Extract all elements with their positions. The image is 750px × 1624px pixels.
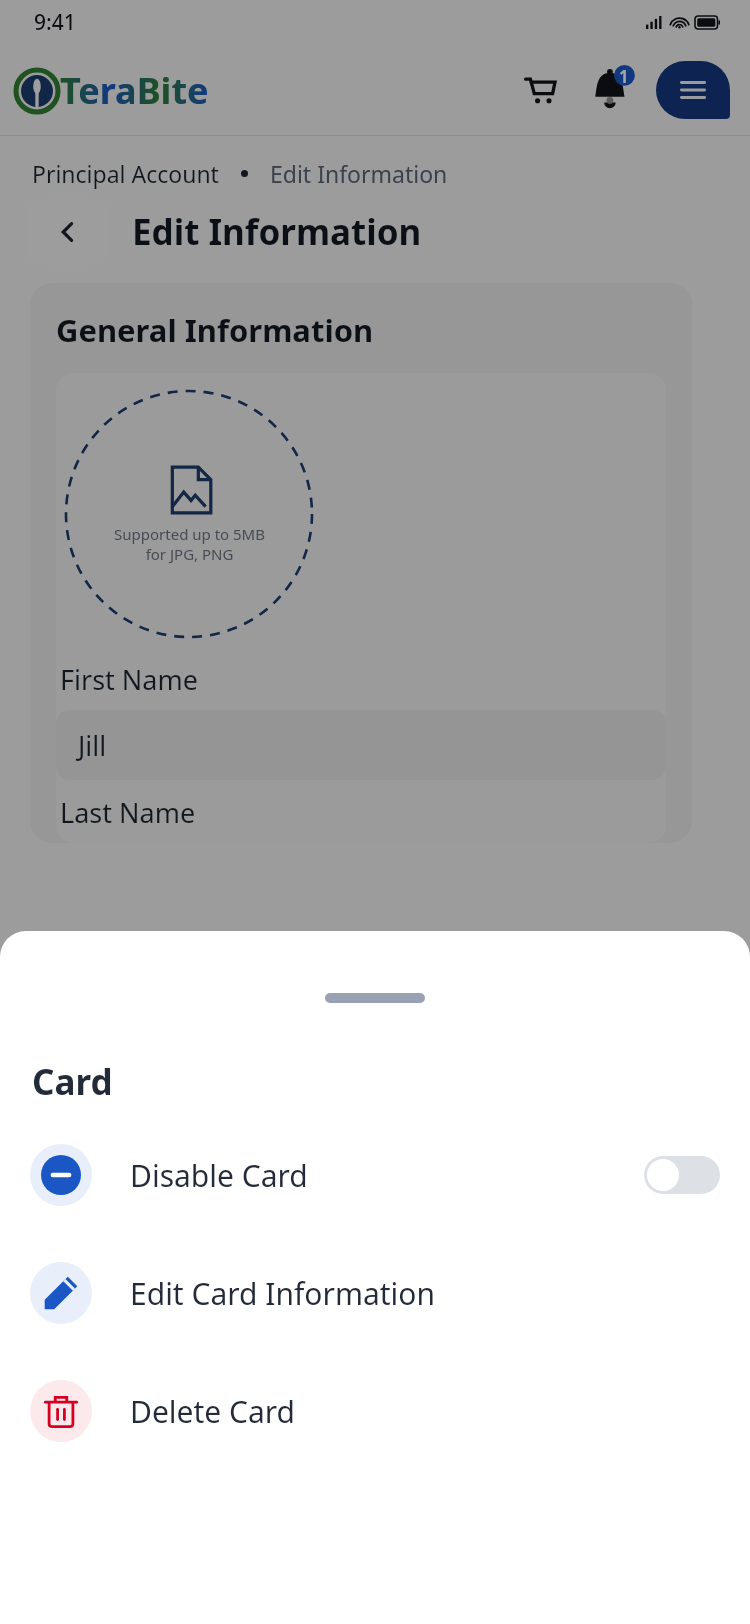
button[interactable]: Disable Card toggle	[644, 1156, 720, 1194]
staticText: First Name	[60, 661, 198, 698]
staticText: Last Name	[60, 794, 196, 831]
button[interactable]: Menu	[656, 61, 730, 119]
staticText: 1	[619, 65, 629, 88]
staticText: TeraBite	[60, 66, 209, 115]
staticText: Edit Card Information	[130, 1273, 436, 1314]
staticText: General Information	[56, 309, 374, 351]
staticText: Edit Information	[270, 158, 448, 189]
staticText: Supported up to 5MB for JPG, PNG	[114, 524, 265, 564]
button[interactable]: Disable Card	[0, 1144, 750, 1206]
staticText: Delete Card	[130, 1391, 296, 1432]
button[interactable]: Edit Card Information	[0, 1262, 750, 1324]
staticText: Principal Account	[32, 158, 219, 189]
button[interactable]: Cart	[516, 66, 564, 114]
staticText: Edit Information	[132, 208, 422, 256]
button[interactable]: Back	[28, 199, 108, 265]
staticText: 9:41	[34, 8, 76, 37]
button[interactable]: Notifications	[586, 64, 638, 116]
button[interactable]: Delete Card	[0, 1380, 750, 1442]
staticText: Disable Card	[130, 1155, 308, 1196]
staticText: Card	[32, 1058, 113, 1106]
staticText: Jill	[78, 727, 107, 764]
